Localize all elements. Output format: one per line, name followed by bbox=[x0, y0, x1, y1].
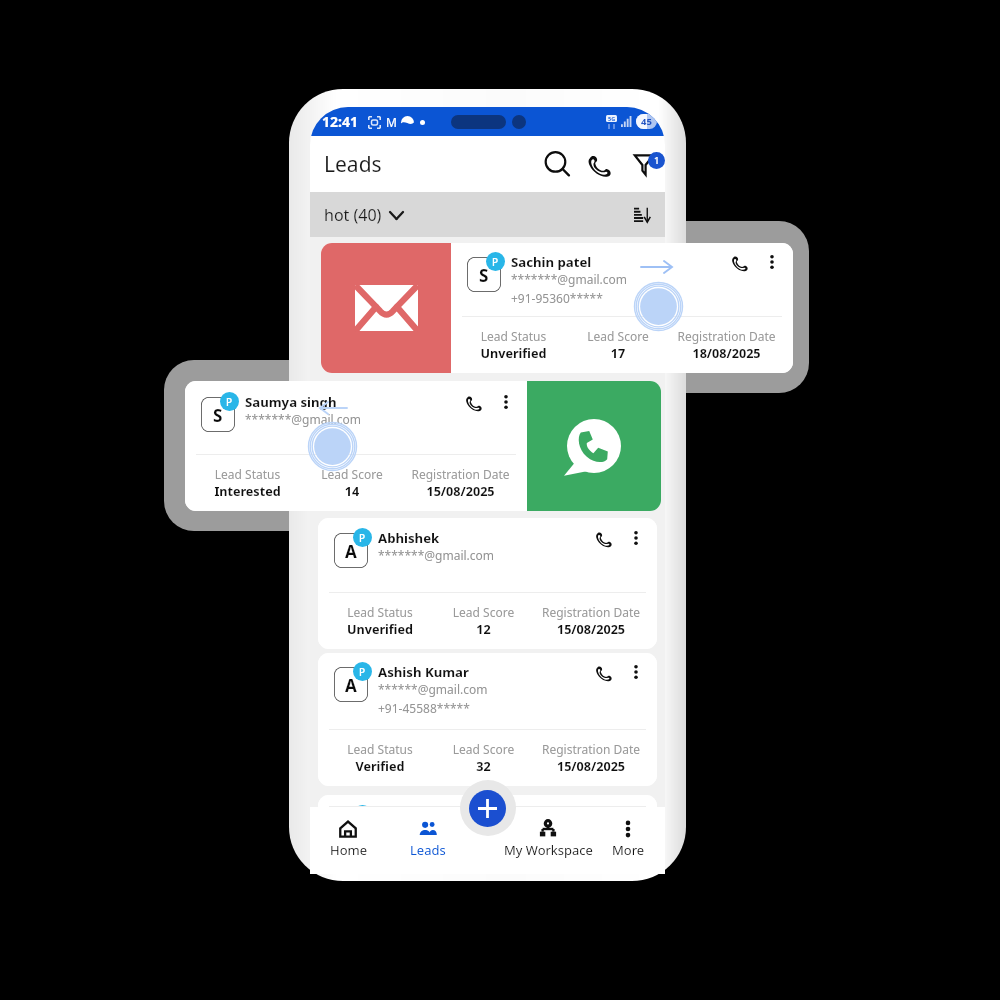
staticText: 12:41 bbox=[322, 112, 358, 131]
staticText: Registration Date bbox=[394, 466, 527, 482]
button[interactable]: hot (40) bbox=[318, 198, 410, 232]
staticText: 12 bbox=[442, 621, 525, 638]
staticText: Registration Date bbox=[525, 741, 657, 757]
staticText: Lead Score bbox=[576, 328, 660, 344]
staticText: Ashish Kumar bbox=[378, 663, 469, 681]
staticText: *****@gmail.com bbox=[378, 824, 481, 840]
button[interactable]: More options bbox=[491, 393, 521, 423]
staticText: Registration Date bbox=[525, 818, 657, 834]
staticText: 18/08/2025 bbox=[660, 345, 793, 362]
staticText: Lead Status bbox=[318, 604, 442, 620]
button[interactable]: Call bbox=[587, 663, 621, 697]
staticText: 45 bbox=[641, 115, 652, 128]
staticText: P bbox=[492, 255, 499, 269]
staticText: P bbox=[226, 395, 233, 409]
staticText: hot (40) bbox=[324, 204, 382, 226]
button[interactable]: Call bbox=[587, 529, 621, 563]
staticText: Leads bbox=[410, 841, 446, 859]
staticText: Lead Status bbox=[185, 466, 310, 482]
staticText: P bbox=[359, 665, 366, 679]
button[interactable]: R bbox=[318, 795, 657, 863]
staticText: A bbox=[345, 540, 357, 563]
staticText: More bbox=[612, 841, 645, 859]
staticText: Lead Status bbox=[451, 328, 576, 344]
button[interactable]: Call bbox=[723, 253, 757, 287]
button[interactable]: My Workspace bbox=[502, 807, 594, 863]
button[interactable]: More options bbox=[621, 529, 651, 559]
button[interactable]: S bbox=[321, 243, 793, 373]
staticText: Lead Score bbox=[442, 604, 525, 620]
staticText: Lead Status bbox=[318, 818, 442, 834]
button[interactable]: S bbox=[185, 381, 661, 511]
button[interactable]: More options bbox=[757, 253, 787, 283]
staticText: Registration Date bbox=[660, 328, 793, 344]
staticText: 32 bbox=[442, 758, 525, 775]
staticText: S bbox=[213, 404, 223, 427]
staticText: Lead Status bbox=[318, 741, 442, 757]
staticText: S bbox=[479, 264, 489, 287]
staticText: R bbox=[345, 817, 357, 840]
staticText: Sachin patel bbox=[511, 253, 592, 271]
staticText: Verified bbox=[318, 758, 442, 775]
staticText: Unverified bbox=[318, 621, 442, 638]
staticText: *******@gmail.com bbox=[245, 411, 362, 427]
button[interactable]: Call bbox=[579, 143, 622, 186]
button[interactable]: A bbox=[318, 653, 657, 786]
staticText: Rohit bbox=[378, 806, 414, 824]
button[interactable]: Sort bbox=[625, 198, 659, 232]
staticText: 17 bbox=[576, 345, 660, 362]
staticText: 21 bbox=[442, 835, 525, 852]
button[interactable]: Call bbox=[457, 393, 491, 427]
staticText: ******@gmail.com bbox=[378, 681, 488, 697]
staticText: Home bbox=[330, 841, 367, 859]
staticText: 14 bbox=[310, 483, 394, 500]
staticText: M bbox=[386, 114, 397, 130]
button[interactable]: Leads bbox=[400, 807, 456, 863]
staticText: Verified bbox=[318, 835, 442, 852]
button[interactable]: More options bbox=[621, 663, 651, 693]
button[interactable]: Call bbox=[587, 806, 621, 840]
staticText: Interested bbox=[185, 483, 310, 500]
button[interactable]: A bbox=[318, 518, 657, 649]
staticText: 15/08/2025 bbox=[525, 835, 657, 852]
staticText: *******@gmail.com bbox=[511, 271, 628, 287]
button[interactable]: Add lead bbox=[469, 790, 506, 827]
staticText: 1 bbox=[654, 154, 660, 167]
staticText: 15/08/2025 bbox=[394, 483, 527, 500]
staticText: *******@gmail.com bbox=[378, 547, 495, 563]
staticText: Abhishek bbox=[378, 529, 440, 547]
staticText: 5G bbox=[608, 115, 616, 122]
staticText: Unverified bbox=[451, 345, 576, 362]
button[interactable]: Filter bbox=[622, 143, 665, 186]
staticText: Leads bbox=[324, 150, 382, 179]
staticText: 15/08/2025 bbox=[525, 758, 657, 775]
staticText: Lead Score bbox=[442, 741, 525, 757]
staticText: 15/08/2025 bbox=[525, 621, 657, 638]
button[interactable]: More bbox=[600, 807, 656, 863]
button[interactable]: Search bbox=[536, 143, 579, 186]
staticText: My Workspace bbox=[504, 841, 593, 859]
staticText: Lead Score bbox=[310, 466, 394, 482]
staticText: +91-45588***** bbox=[378, 700, 470, 716]
staticText: Registration Date bbox=[525, 604, 657, 620]
staticText: Lead Score bbox=[442, 818, 525, 834]
button[interactable]: Home bbox=[320, 807, 376, 863]
button[interactable]: More options bbox=[621, 806, 651, 836]
staticText: +91-95360***** bbox=[511, 290, 603, 306]
staticText: Saumya singh bbox=[245, 393, 337, 411]
staticText: A bbox=[345, 674, 357, 697]
staticText: P bbox=[359, 531, 366, 545]
